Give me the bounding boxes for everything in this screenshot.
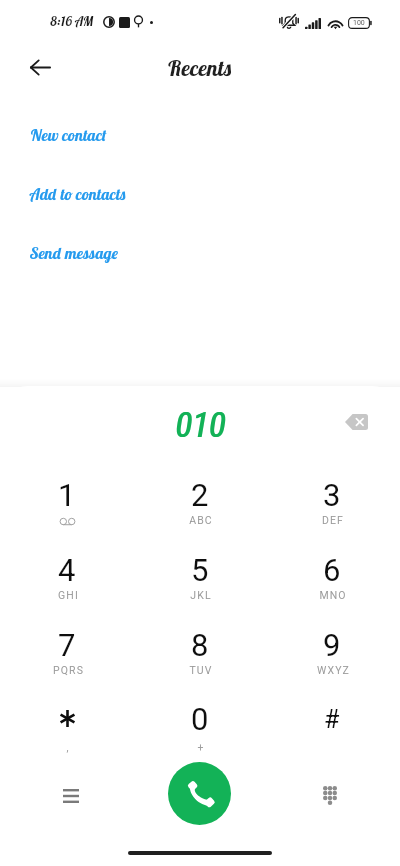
staticText: GHI bbox=[58, 589, 79, 601]
staticText: PQRS bbox=[53, 664, 84, 676]
staticText: 010 bbox=[175, 405, 226, 446]
staticText: 7 bbox=[58, 627, 76, 663]
staticText: MNO bbox=[319, 589, 347, 601]
button[interactable]: 9 bbox=[282, 627, 382, 695]
staticText: 8 bbox=[191, 627, 209, 663]
button[interactable]: 7 bbox=[17, 627, 117, 695]
staticText: DEF bbox=[322, 514, 344, 526]
staticText: Send message bbox=[30, 243, 119, 263]
button[interactable]: 6 bbox=[282, 552, 382, 620]
button[interactable]: Dialpad bbox=[307, 773, 352, 818]
button[interactable]: 3 bbox=[282, 477, 382, 545]
button[interactable]: 5 bbox=[150, 552, 250, 620]
staticText: 2 bbox=[191, 477, 209, 513]
button[interactable]: Backspace bbox=[333, 399, 379, 445]
staticText: WXYZ bbox=[317, 664, 350, 676]
staticText: 010 bbox=[176, 405, 227, 446]
button[interactable]: 4 bbox=[17, 552, 117, 620]
button[interactable]: Call log bbox=[48, 773, 93, 818]
button[interactable]: # bbox=[282, 701, 382, 769]
button[interactable]: 0 bbox=[150, 701, 250, 769]
staticText: 9 bbox=[323, 627, 341, 663]
button[interactable]: Call bbox=[168, 762, 231, 825]
button[interactable]: New contact bbox=[22, 119, 115, 151]
staticText: ABC bbox=[189, 514, 213, 526]
button[interactable]: , bbox=[17, 701, 117, 769]
staticText: 8:16 AM bbox=[50, 13, 94, 29]
staticText: 4 bbox=[58, 552, 76, 588]
button[interactable]: Back bbox=[18, 45, 62, 89]
staticText: New contact bbox=[30, 125, 107, 145]
staticText: JKL bbox=[190, 589, 212, 601]
button[interactable]: Add to contacts bbox=[22, 178, 135, 210]
button[interactable]: 8 bbox=[150, 627, 250, 695]
staticText: 0 bbox=[191, 701, 209, 737]
staticText: 3 bbox=[323, 477, 341, 513]
staticText: 100 bbox=[353, 19, 365, 27]
button[interactable]: 1 bbox=[17, 477, 117, 545]
staticText: Recents bbox=[167, 54, 233, 82]
staticText: Add to contacts bbox=[30, 184, 127, 204]
staticText: 5 bbox=[191, 552, 209, 588]
button[interactable]: Send message bbox=[22, 237, 127, 269]
staticText: , bbox=[66, 741, 70, 753]
button[interactable]: 2 bbox=[150, 477, 250, 545]
staticText: # bbox=[324, 705, 340, 734]
staticText: + bbox=[197, 741, 205, 753]
staticText: TUV bbox=[189, 664, 213, 676]
staticText: 1 bbox=[58, 477, 76, 513]
staticText: 6 bbox=[323, 552, 341, 588]
